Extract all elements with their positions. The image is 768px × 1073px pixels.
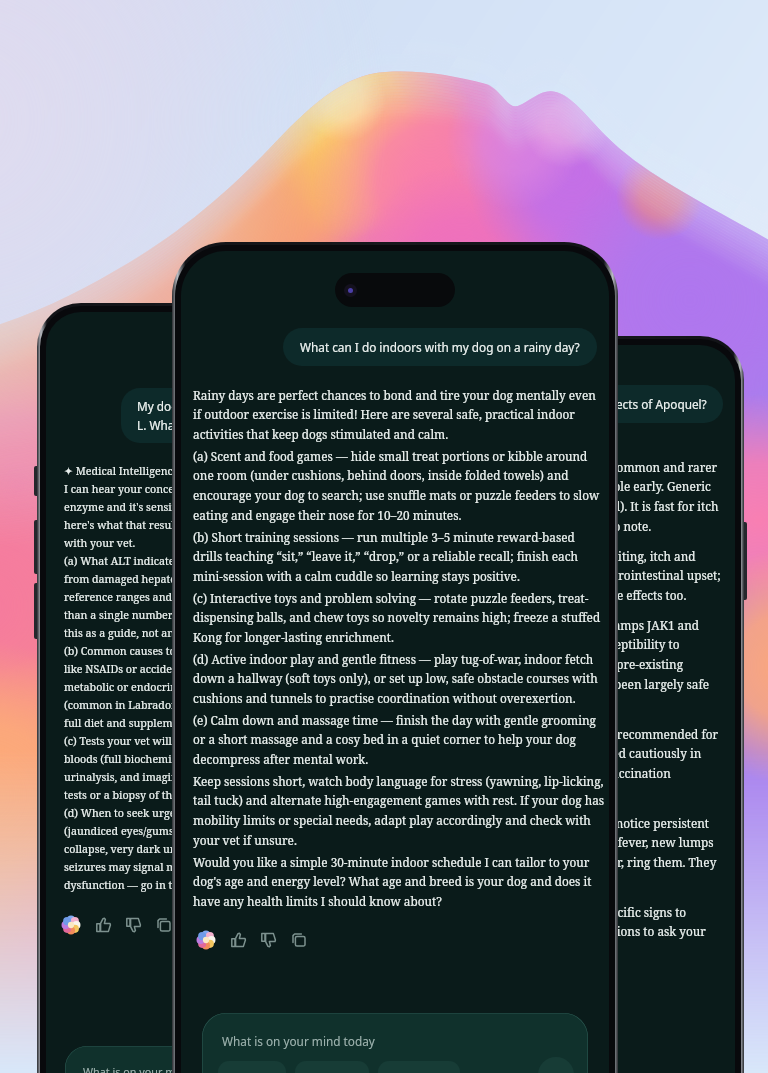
- button[interactable]: What are the side effects of Apoquel?: [485, 385, 723, 423]
- button[interactable]: Send: [538, 1057, 574, 1073]
- staticText: (d) Active indoor play and gentle fitnes…: [193, 651, 605, 707]
- staticText: My dog's ALT is high on his bloods. L. W…: [137, 398, 330, 433]
- staticText: Keep sessions short, watch body language…: [193, 773, 605, 849]
- button[interactable]: My dog's ALT is high on his bloods. L. W…: [121, 388, 346, 443]
- staticText: (c) Interactive toys and problem solving…: [193, 590, 605, 646]
- staticText: (b) Immune effects: because it damps JAK…: [435, 617, 721, 713]
- button[interactable]: Thumb up: [94, 915, 114, 935]
- staticText: Here is a clear summary of the common an…: [435, 459, 721, 535]
- staticText: Rainy days are perfect chances to bond a…: [193, 387, 605, 443]
- staticText: Would you like a checklist of specific s…: [435, 904, 721, 960]
- button[interactable]: Gemini: [193, 927, 219, 953]
- staticText: (a) Scent and food games — hide small tr…: [193, 448, 605, 524]
- staticText: (b) Short training sessions — run multip…: [193, 529, 605, 585]
- staticText: What are the side effects of Apoquel?: [501, 396, 707, 412]
- staticText: (b) Common causes to consider in a dog: …: [64, 644, 314, 731]
- button[interactable]: What is on your mind today: [202, 1013, 588, 1073]
- button[interactable]: Thumb down: [259, 930, 279, 950]
- button[interactable]: Copy: [154, 915, 174, 935]
- staticText: ✦ Medical Intelligence mode is on for th…: [64, 464, 314, 551]
- staticText: (a) What ALT indicates: it is an enzyme …: [64, 554, 314, 641]
- button[interactable]: Thumb down: [124, 915, 144, 935]
- staticText: What is on your mind today: [222, 1033, 375, 1049]
- staticText: (d) When to seek urgent care: yellowing …: [64, 806, 314, 893]
- staticText: (d) When to call your vet: if you notice…: [435, 815, 721, 891]
- button[interactable]: What can I do indoors with my dog on a r…: [283, 328, 597, 366]
- button[interactable]: Copy: [289, 930, 309, 950]
- staticText: (a) Common side effects are vomiting, it…: [435, 548, 721, 604]
- staticText: What is on your mind today: [83, 1064, 223, 1073]
- staticText: (c) Tests your vet will usually run next…: [64, 734, 314, 803]
- staticText: What can I do indoors with my dog on a r…: [300, 339, 580, 355]
- button[interactable]: Thumb up: [229, 930, 249, 950]
- staticText: Would you like a simple 30-minute indoor…: [193, 854, 605, 910]
- staticText: (c) Cautions: it is not licensed or reco…: [435, 726, 721, 802]
- staticText: (e) Calm down and massage time — finish …: [193, 712, 605, 768]
- button[interactable]: What is on your mind today: [65, 1046, 339, 1073]
- button[interactable]: Gemini: [58, 912, 84, 938]
